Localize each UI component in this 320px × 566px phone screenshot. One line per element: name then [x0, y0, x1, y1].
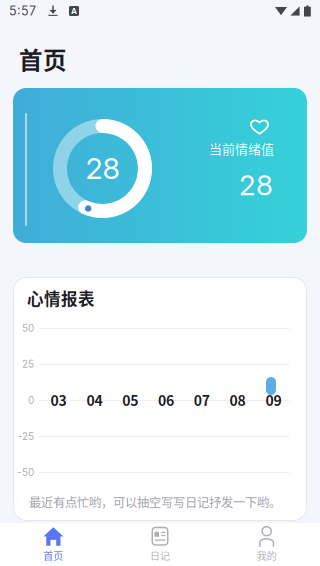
- staticText: 06: [158, 390, 174, 410]
- staticText: 09: [265, 390, 281, 410]
- staticText: 日记: [150, 548, 170, 563]
- staticText: 07: [194, 390, 210, 410]
- staticText: 0: [28, 394, 34, 406]
- button[interactable]: 我的: [213, 523, 320, 566]
- staticText: A: [71, 6, 77, 16]
- staticText: 心情报表: [27, 286, 95, 310]
- button[interactable]: 日记: [107, 523, 213, 566]
- button[interactable]: 首页: [0, 523, 107, 566]
- staticText: 50: [22, 322, 34, 334]
- staticText: 最近有点忙哟，可以抽空写写日记抒发一下哟。: [29, 493, 281, 511]
- staticText: 首页: [19, 42, 67, 76]
- staticText: 我的: [257, 548, 277, 563]
- staticText: 05: [122, 390, 138, 410]
- staticText: 08: [230, 390, 246, 410]
- staticText: 当前情绪值: [209, 139, 274, 158]
- staticText: 04: [86, 390, 102, 410]
- staticText: 28: [85, 151, 119, 186]
- staticText: 25: [22, 358, 34, 370]
- staticText: 首页: [43, 548, 63, 563]
- staticText: 5:57: [9, 3, 36, 18]
- staticText: -50: [17, 466, 34, 478]
- staticText: 03: [51, 390, 67, 410]
- staticText: 28: [239, 168, 273, 202]
- staticText: -25: [18, 430, 34, 442]
